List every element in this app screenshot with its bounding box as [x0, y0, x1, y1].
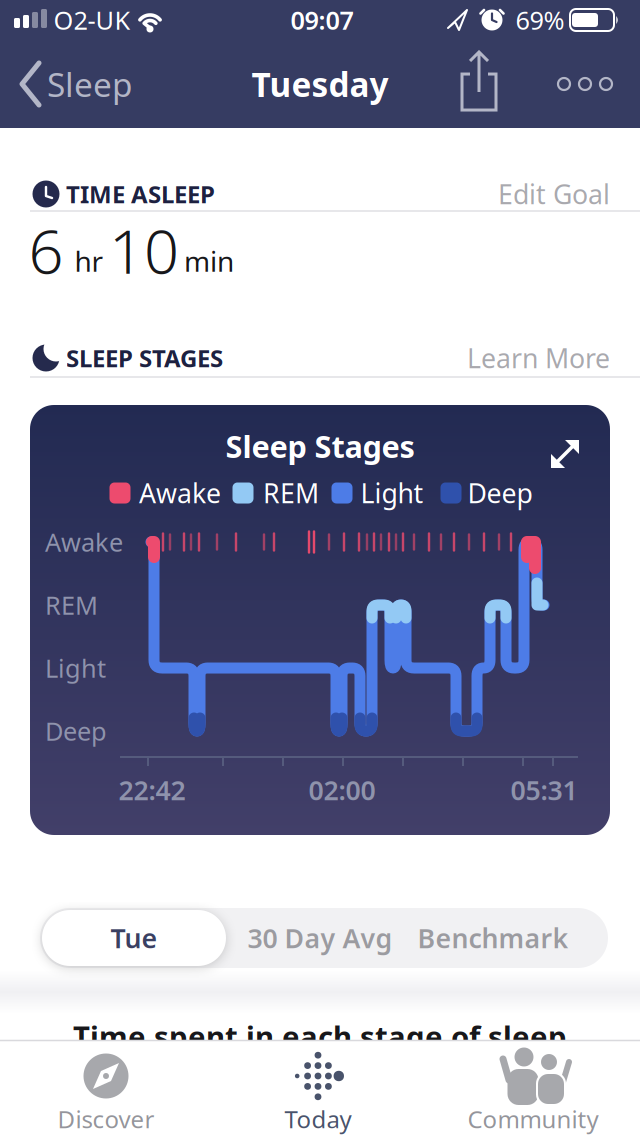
staticText: Sleep Stages — [225, 426, 414, 466]
staticText: Community — [467, 1103, 598, 1135]
staticText: min — [184, 242, 234, 280]
staticText: Awake — [45, 525, 123, 559]
staticText: Time spent in each stage of sleep — [73, 1016, 567, 1055]
staticText: 22:42 — [118, 772, 185, 808]
staticText: O2-UK — [53, 3, 130, 37]
staticText: TIME ASLEEP — [66, 178, 215, 210]
staticText: Discover — [57, 1103, 154, 1135]
staticText: REM — [263, 475, 319, 511]
staticText: 6 — [28, 209, 63, 291]
staticText: Benchmark — [417, 920, 568, 956]
staticText: 09:07 — [290, 3, 353, 37]
staticText: Sleep — [47, 62, 133, 106]
staticText: Deep — [45, 714, 107, 748]
staticText: SLEEP STAGES — [66, 342, 223, 374]
staticText: Awake — [139, 475, 221, 511]
staticText: Edit Goal — [498, 176, 610, 212]
staticText: 30 Day Avg — [247, 920, 392, 956]
staticText: Deep — [467, 475, 532, 511]
staticText: Tue — [110, 920, 157, 956]
staticText: REM — [45, 588, 98, 622]
staticText: Tuesday — [251, 62, 388, 106]
staticText: 02:00 — [308, 772, 375, 808]
staticText: Light — [45, 651, 106, 685]
staticText: 10 — [109, 209, 179, 291]
staticText: hr — [74, 242, 103, 280]
staticText: Today — [284, 1103, 351, 1135]
staticText: 05:31 — [510, 772, 577, 808]
staticText: 69% — [515, 3, 564, 37]
staticText: Learn More — [467, 340, 610, 376]
staticText: Light — [360, 475, 423, 511]
